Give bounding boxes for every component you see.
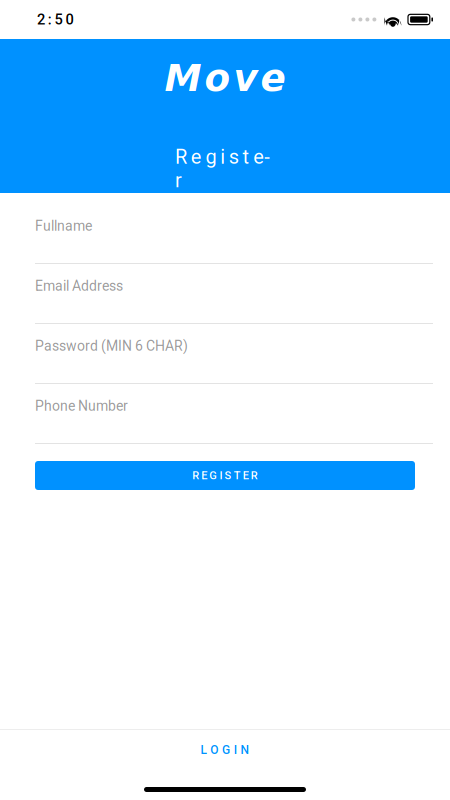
button[interactable]: LOGIN xyxy=(0,730,450,770)
staticText: Fullname xyxy=(35,218,92,234)
staticText: Register xyxy=(175,145,275,169)
staticText: Phone Number xyxy=(35,398,128,414)
staticText: Move xyxy=(164,56,285,100)
staticText: Password (MIN 6 CHAR) xyxy=(35,338,188,354)
button[interactable]: REGISTER xyxy=(35,461,415,490)
staticText: LOGIN xyxy=(200,743,249,757)
staticText: 2:50 xyxy=(37,11,73,28)
staticText: Email Address xyxy=(35,278,123,294)
staticText: REGISTER xyxy=(192,469,258,482)
